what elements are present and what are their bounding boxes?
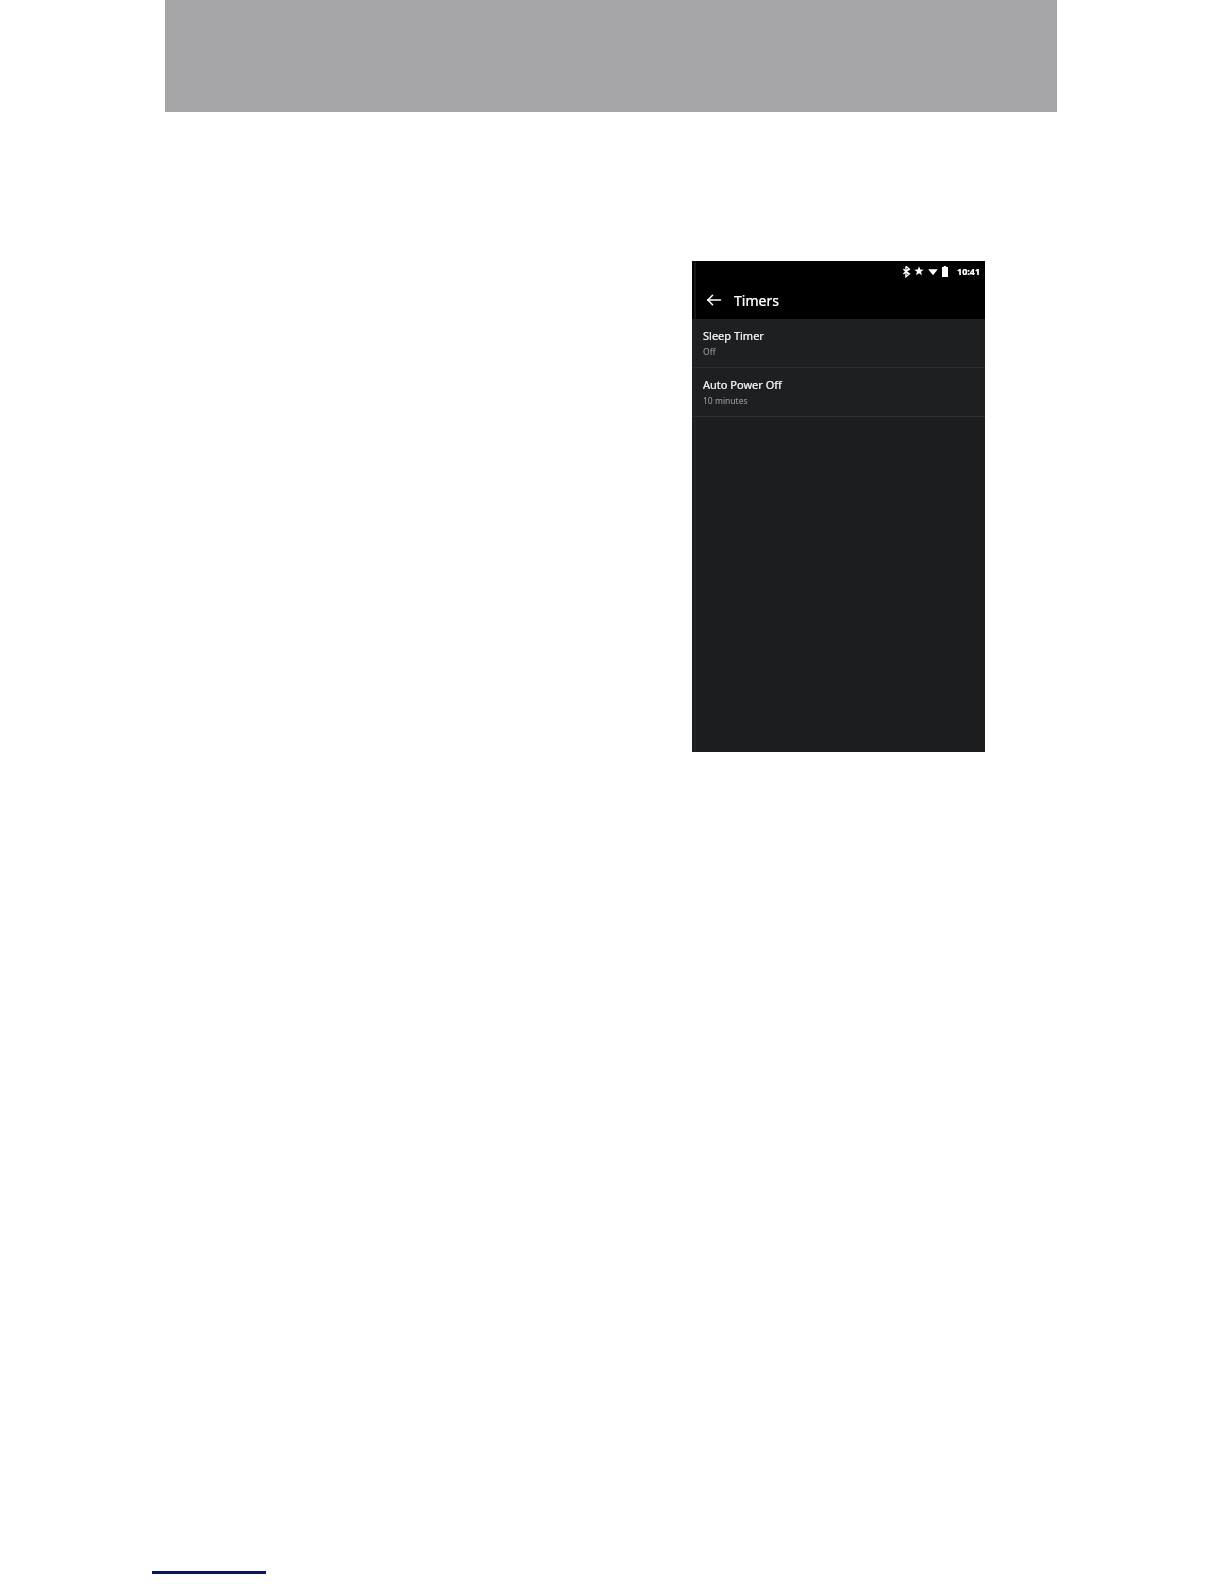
button[interactable]: Auto Power Off	[692, 368, 985, 416]
staticText: 10 minutes	[703, 395, 748, 407]
button[interactable]: Sleep Timer	[692, 319, 985, 367]
staticText: Sleep Timer	[703, 328, 764, 343]
staticText: 10:41	[957, 265, 981, 277]
button[interactable]: Back	[700, 286, 728, 314]
staticText: Auto Power Off	[703, 377, 782, 392]
staticText: Timers	[734, 291, 779, 310]
staticText: Off	[703, 346, 716, 358]
